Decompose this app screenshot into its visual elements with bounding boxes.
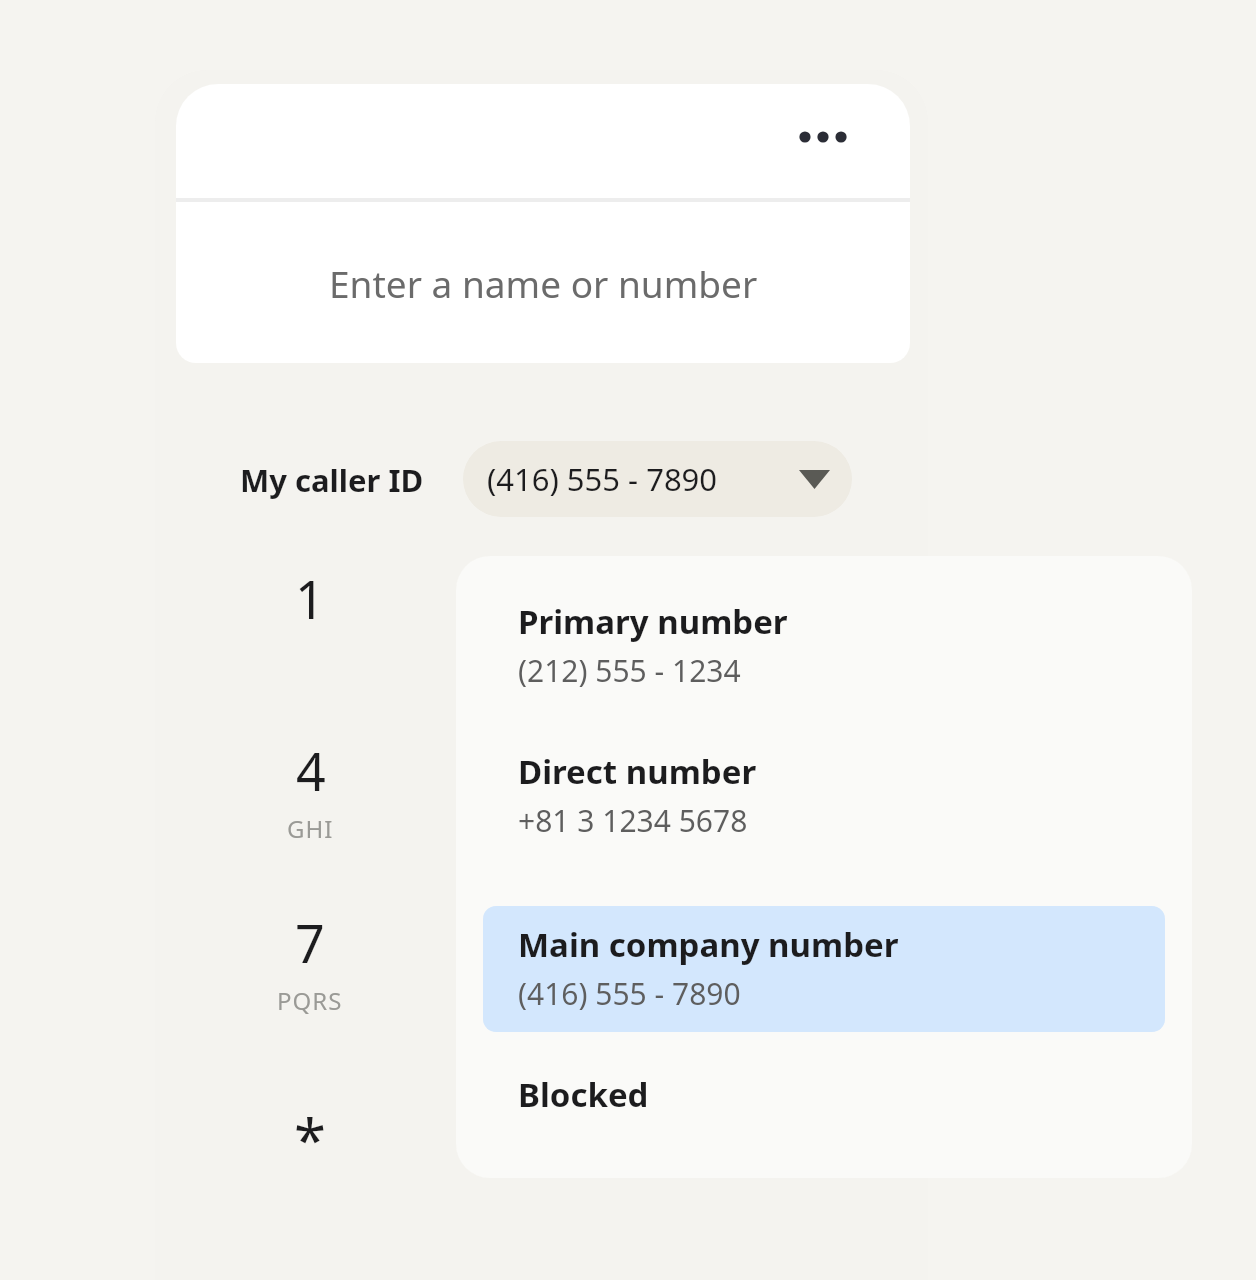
staticText: (212) 555 - 1234 <box>518 650 741 691</box>
button[interactable]: Primary number <box>483 583 1165 709</box>
button[interactable]: Main company number <box>483 906 1165 1032</box>
button[interactable]: More options <box>791 105 855 169</box>
button[interactable]: 1 <box>250 563 370 673</box>
button[interactable]: Blocked <box>483 1056 1165 1130</box>
staticText: (416) 555 - 7890 <box>487 458 718 500</box>
staticText: Enter a name or number <box>329 258 758 308</box>
staticText: 4 <box>296 735 326 806</box>
staticText: (416) 555 - 7890 <box>518 973 741 1014</box>
staticText: Blocked <box>518 1072 649 1117</box>
staticText: My caller ID <box>240 459 424 501</box>
button[interactable]: * <box>250 1100 370 1210</box>
staticText: +81 3 1234 5678 <box>518 800 748 841</box>
staticText: Direct number <box>518 749 757 794</box>
button[interactable]: 7 <box>250 907 370 1017</box>
staticText: GHI <box>287 812 334 845</box>
staticText: Main company number <box>518 922 899 967</box>
staticText: * <box>294 1100 326 1179</box>
button[interactable]: Direct number <box>483 733 1165 859</box>
staticText: 1 <box>295 563 325 634</box>
staticText: Primary number <box>518 599 788 644</box>
button[interactable]: 4 <box>250 735 370 845</box>
button[interactable]: (416) 555 - 7890 <box>463 441 852 517</box>
staticText: PQRS <box>277 984 343 1017</box>
button[interactable]: Enter a name or number <box>176 202 910 363</box>
staticText: 7 <box>295 907 325 978</box>
